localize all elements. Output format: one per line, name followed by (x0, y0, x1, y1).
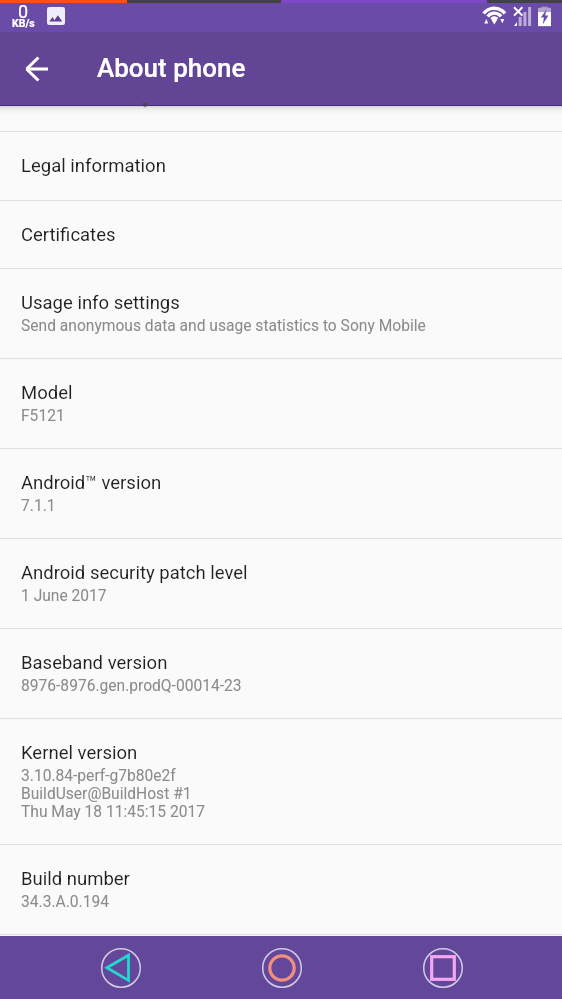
staticText: Kernel version (21, 742, 138, 764)
staticText: 8976-8976.gen.prodQ-00014-23 (21, 677, 242, 695)
staticText: Baseband version (21, 652, 168, 674)
button[interactable]: Legal information (0, 132, 562, 201)
button[interactable]: Recent apps (411, 936, 475, 999)
staticText: 1 June 2017 (21, 587, 107, 605)
staticText: F5121 (21, 407, 65, 425)
staticText: 3.10.84-perf-g7b80e2f BuildUser@BuildHos… (21, 767, 206, 821)
staticText: KB/s (12, 17, 35, 29)
button[interactable]: Usage info settings (0, 269, 562, 359)
staticText: 7.1.1 (21, 497, 56, 515)
button[interactable]: Home (250, 936, 314, 999)
button[interactable]: Baseband version (0, 629, 562, 719)
staticText: Send anonymous data and usage statistics… (21, 317, 426, 335)
button[interactable]: Certificates (0, 201, 562, 269)
staticText: Legal information (21, 155, 166, 177)
staticText: 0 (18, 1, 29, 22)
button[interactable]: Android™ version (0, 449, 562, 539)
button[interactable]: Android security patch level (0, 539, 562, 629)
staticText: Android™ version (21, 472, 162, 494)
staticText: Certificates (21, 224, 116, 246)
button[interactable]: Build number (0, 845, 562, 935)
staticText: Android security patch level (21, 562, 248, 584)
button[interactable]: Kernel version (0, 719, 562, 845)
staticText: Usage info settings (21, 292, 180, 314)
staticText: Build number (21, 868, 130, 890)
button[interactable]: Back (89, 936, 153, 999)
staticText: 34.3.A.0.194 (21, 893, 109, 911)
button[interactable]: Model (0, 359, 562, 449)
staticText: Model (21, 382, 73, 404)
staticText: About phone (97, 53, 246, 83)
button[interactable]: Navigate up (13, 45, 61, 93)
